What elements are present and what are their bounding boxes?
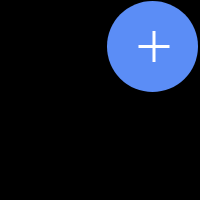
button[interactable]: Add [107, 1, 198, 92]
